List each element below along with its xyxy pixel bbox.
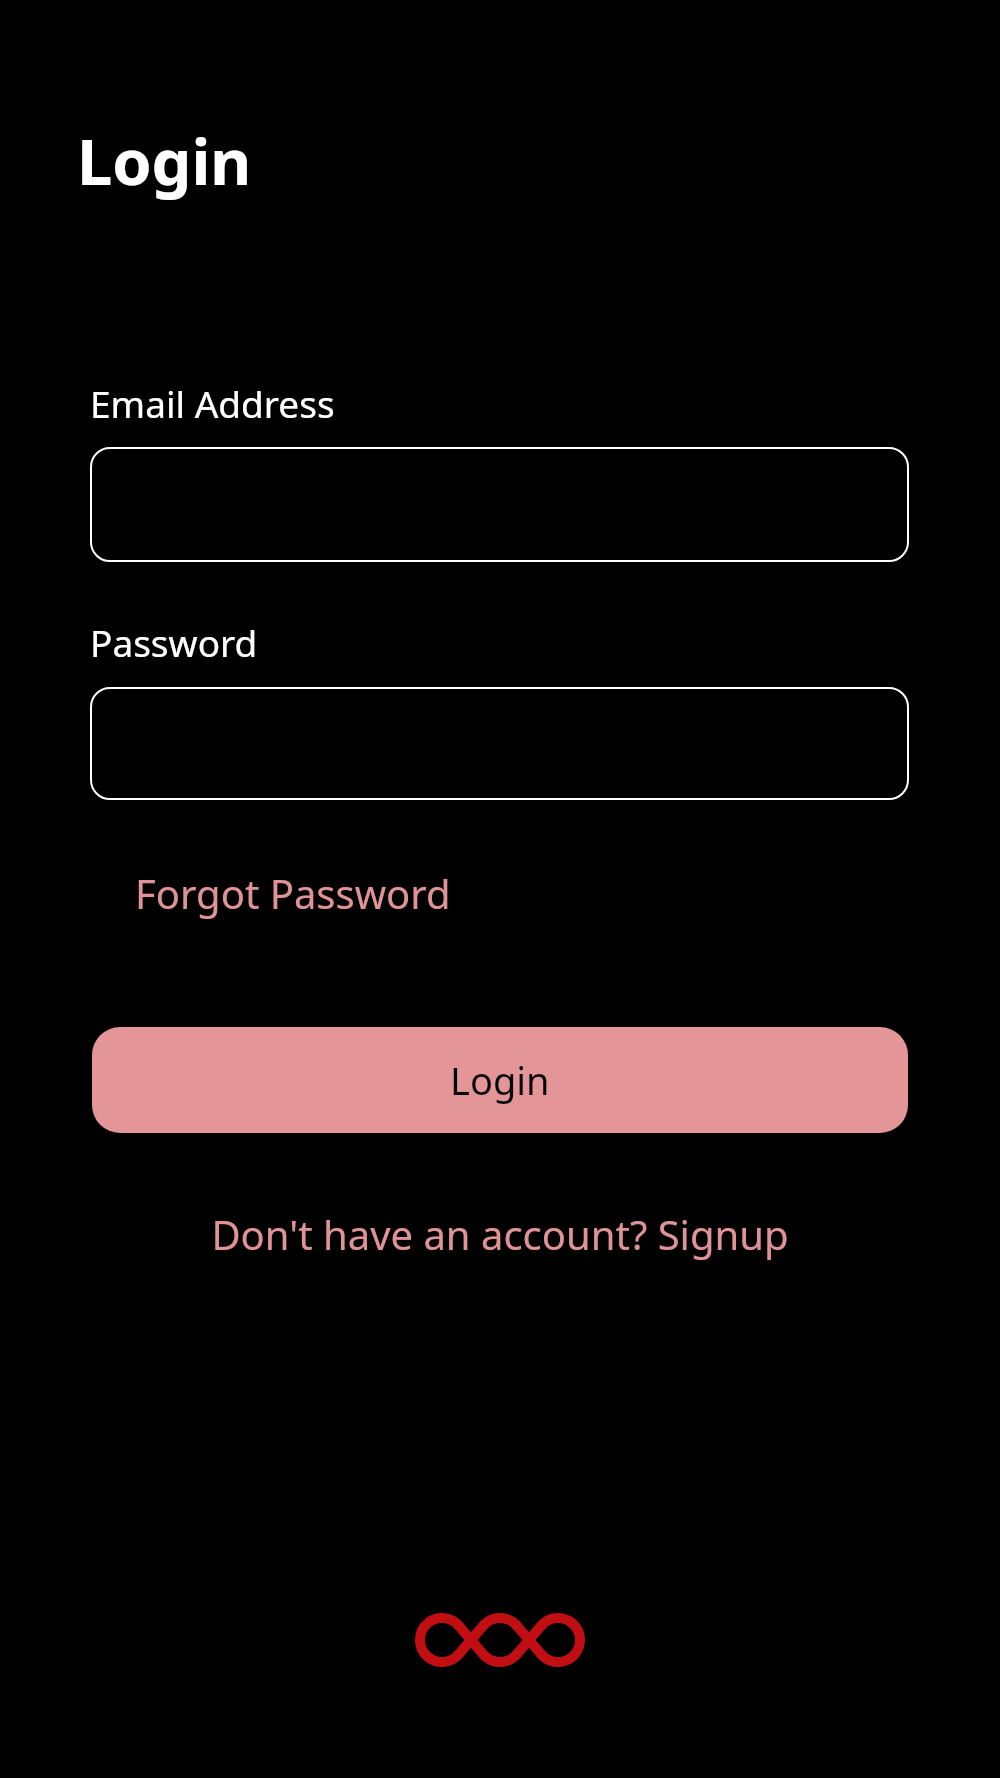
staticText: Password bbox=[90, 617, 258, 667]
button[interactable] bbox=[90, 687, 909, 800]
button[interactable]: Forgot Password bbox=[135, 866, 451, 920]
staticText: Don't have an account? Signup bbox=[211, 1207, 789, 1261]
staticText: Login bbox=[450, 1054, 550, 1106]
staticText: Login bbox=[77, 118, 252, 204]
button[interactable]: Don't have an account? Signup bbox=[0, 1207, 1000, 1261]
button[interactable] bbox=[90, 447, 909, 562]
button[interactable]: Login bbox=[92, 1027, 908, 1133]
staticText: Email Address bbox=[90, 378, 335, 428]
